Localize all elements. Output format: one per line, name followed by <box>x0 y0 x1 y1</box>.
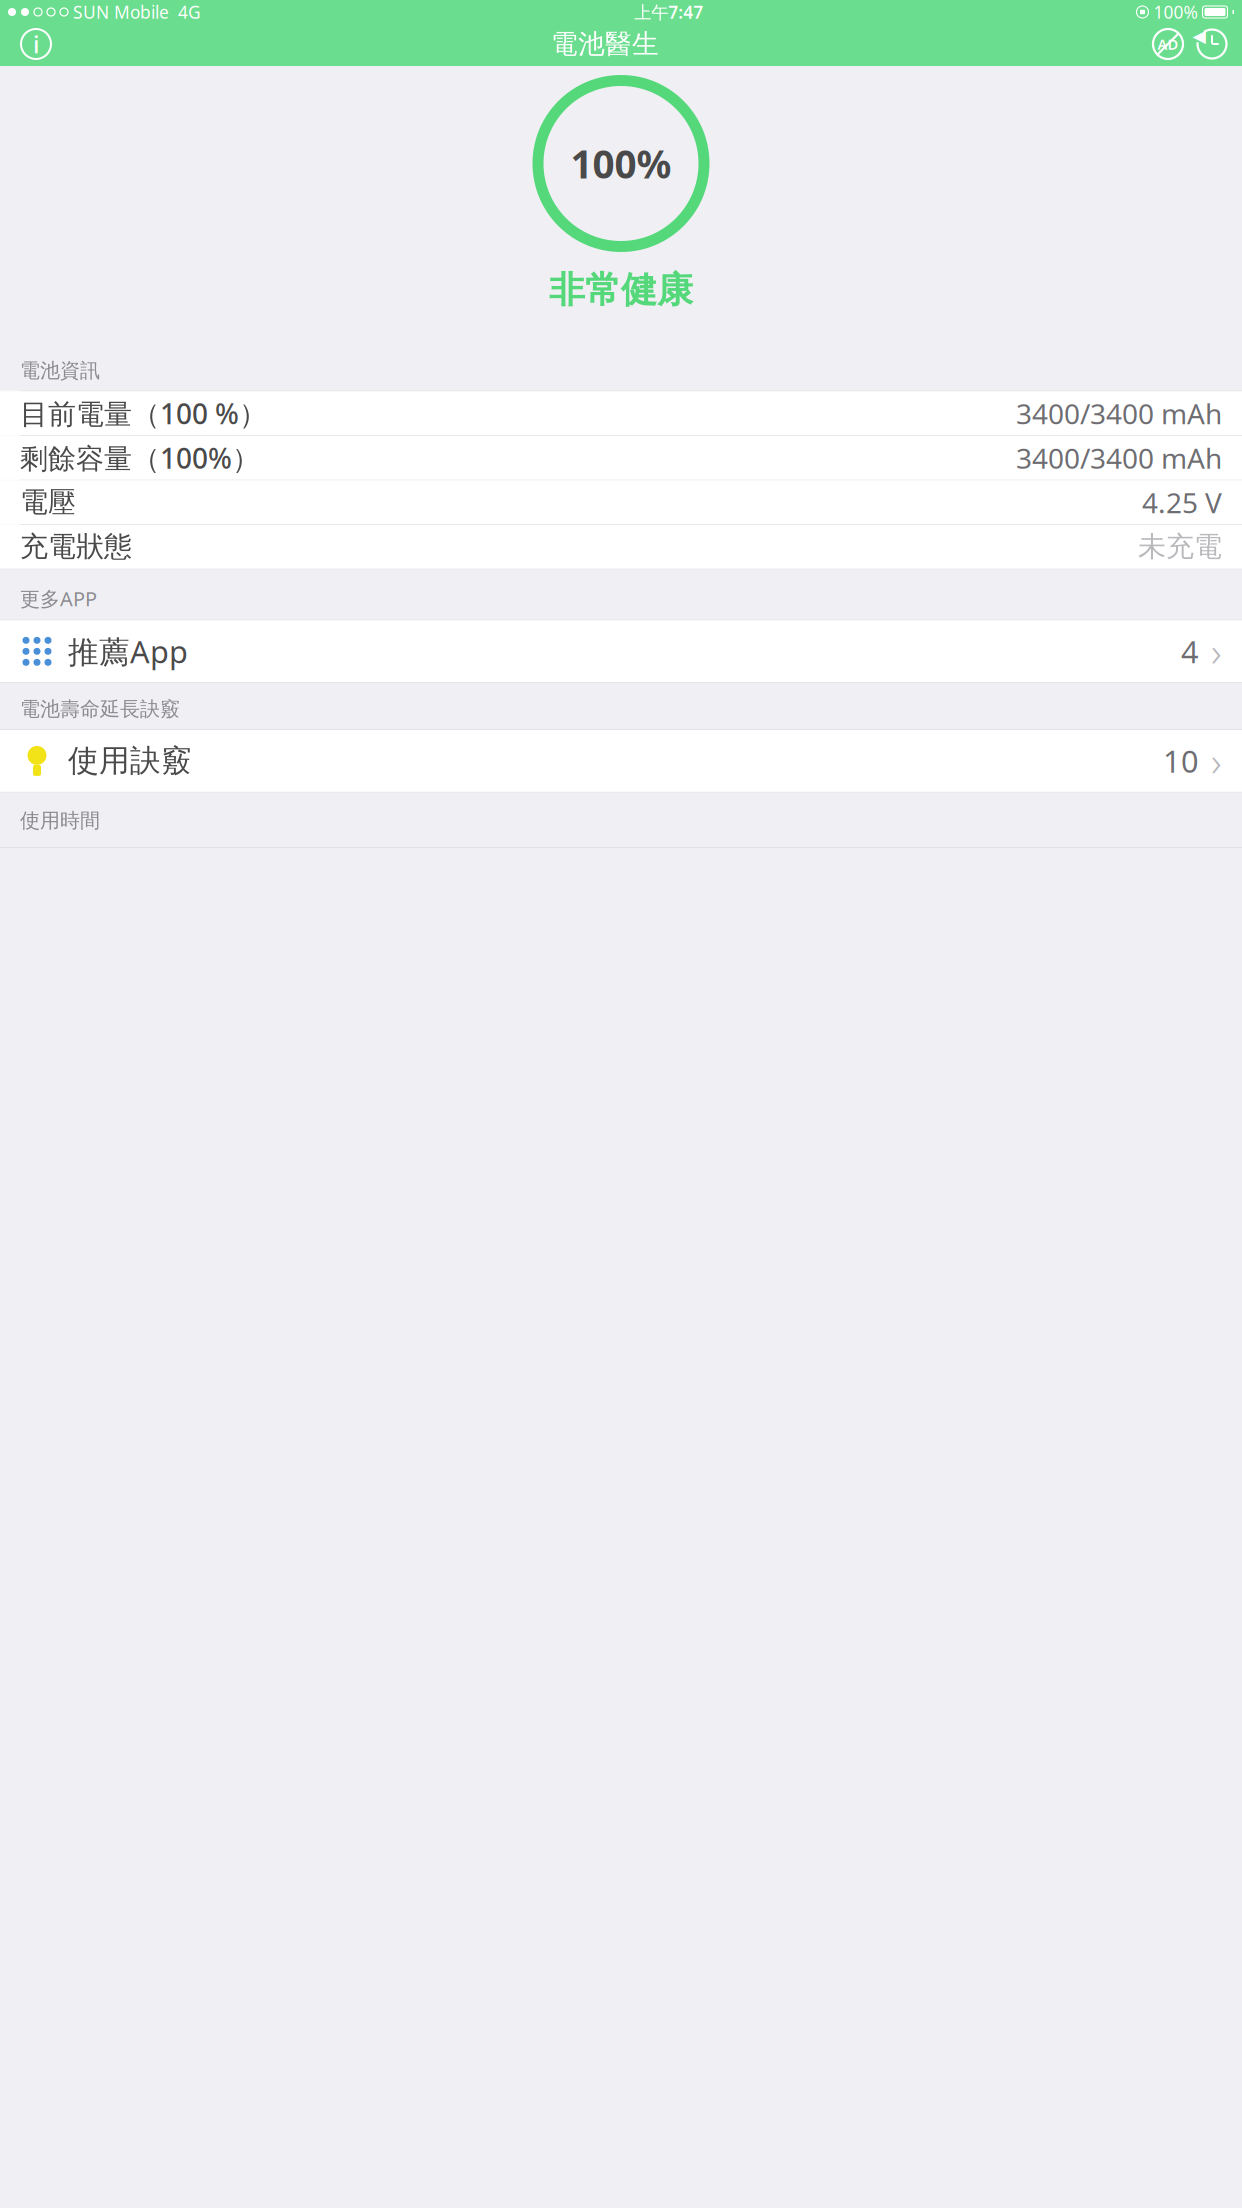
button[interactable]: 推薦App <box>0 620 1242 682</box>
staticText: 使用訣竅 <box>68 742 192 780</box>
staticText: 100% <box>1153 0 1197 23</box>
staticText: 使用時間 <box>20 808 100 833</box>
staticText: 100% <box>570 138 671 189</box>
staticText: 電池醫生 <box>551 28 659 60</box>
staticText: 電壓 <box>20 485 76 519</box>
staticText: 推薦App <box>68 631 188 672</box>
staticText: 非常健康 <box>549 268 693 312</box>
staticText: 4.25 V <box>1142 484 1222 521</box>
staticText: › <box>1211 734 1222 787</box>
staticText: 4G <box>178 0 201 23</box>
button[interactable]: 歷史紀錄 <box>1194 26 1230 62</box>
staticText: 充電狀態 <box>20 530 132 564</box>
staticText: 10 <box>1163 740 1199 781</box>
staticText: 電池資訊 <box>20 358 100 383</box>
staticText: 3400/3400 mAh <box>1016 395 1222 432</box>
staticText: 4 <box>1181 631 1199 672</box>
staticText: ◀ <box>1192 26 1205 46</box>
staticText: AD <box>1157 34 1178 54</box>
staticText: › <box>1211 625 1222 678</box>
staticText: 更多APP <box>20 585 97 612</box>
staticText: 未充電 <box>1138 530 1222 564</box>
staticText: 目前電量（100 %） <box>20 395 267 432</box>
staticText: SUN Mobile <box>73 0 169 23</box>
button[interactable]: 移除廣告 <box>1150 26 1186 62</box>
button[interactable]: 使用訣竅 <box>0 730 1242 792</box>
staticText: 3400/3400 mAh <box>1016 439 1222 476</box>
staticText: i <box>33 28 39 60</box>
staticText: 剩餘容量（100%） <box>20 439 260 476</box>
button[interactable]: 關於 <box>12 26 60 62</box>
staticText: 電池壽命延長訣竅 <box>20 697 180 721</box>
staticText: 上午7:47 <box>634 0 703 23</box>
